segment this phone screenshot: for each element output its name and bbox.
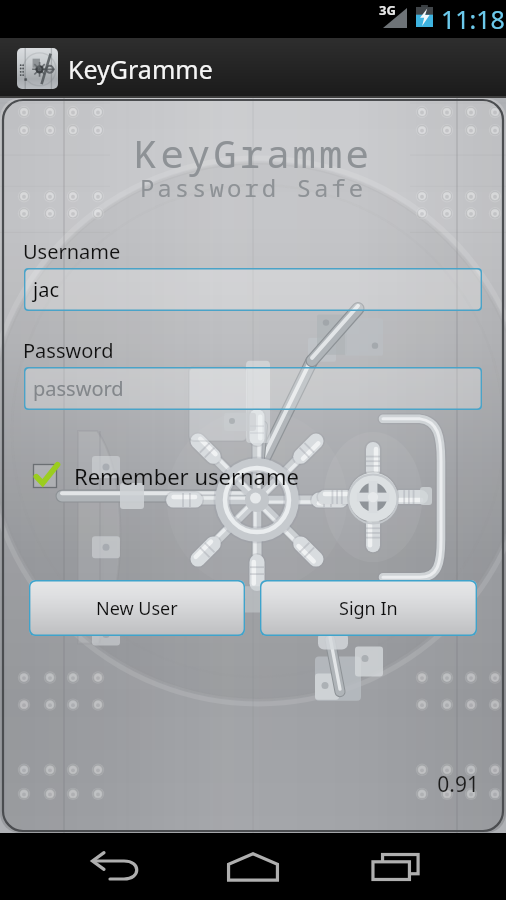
staticText: password xyxy=(33,375,124,402)
button[interactable]: jac xyxy=(24,268,482,311)
staticText: Username xyxy=(23,238,121,265)
button[interactable]: New User xyxy=(29,580,245,636)
staticText: 0.91 xyxy=(0,770,479,799)
staticText: KeyGramme xyxy=(68,52,213,86)
button[interactable]: Recent apps xyxy=(362,839,430,895)
button[interactable]: Remember username xyxy=(30,461,299,491)
button[interactable]: password xyxy=(24,367,482,410)
button[interactable]: Back xyxy=(82,839,150,895)
staticText: jac xyxy=(33,276,59,303)
staticText: Password Safe xyxy=(0,171,506,204)
button[interactable]: Home xyxy=(219,839,287,895)
staticText: Password xyxy=(23,337,114,364)
staticText: 11:18 xyxy=(441,2,505,36)
staticText: New User xyxy=(96,596,178,621)
staticText: 3G xyxy=(379,1,396,19)
staticText: Remember username xyxy=(74,461,299,491)
staticText: Sign In xyxy=(339,596,398,621)
button[interactable]: Sign In xyxy=(260,580,477,636)
staticText: KeyGramme xyxy=(0,126,506,179)
